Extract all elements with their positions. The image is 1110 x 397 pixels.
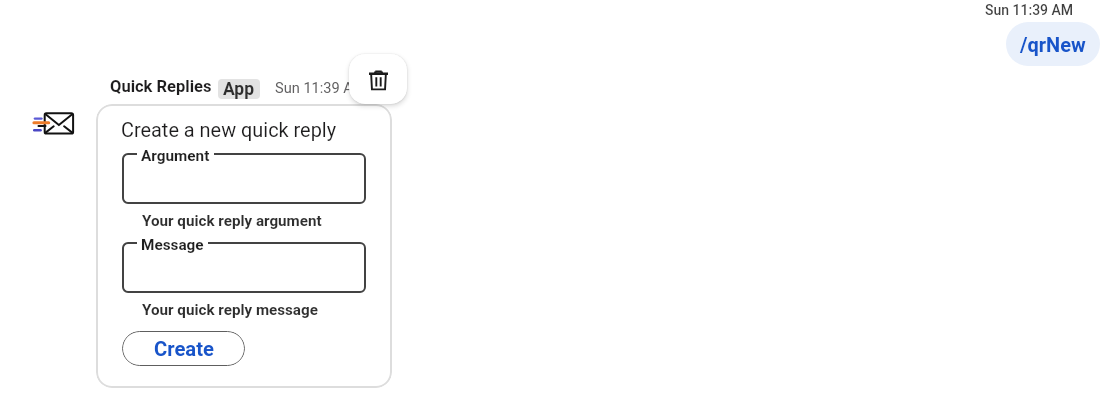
staticText: Quick Replies [110,77,212,96]
staticText: Your quick reply message [142,301,318,319]
button[interactable]: Argument [122,145,366,204]
staticText: Create a new quick reply [121,119,337,142]
button[interactable]: Delete message [349,54,407,104]
staticText: Argument [141,147,210,165]
button[interactable]: /qrNew [1006,22,1100,66]
staticText: App [223,79,255,99]
staticText: Message [141,236,204,254]
button[interactable]: Message [122,234,366,293]
button[interactable]: Create [122,331,245,366]
staticText: Sun 11:39 AM [985,2,1074,18]
staticText: Create [154,337,214,361]
button[interactable]: Quick Replies app avatar [30,108,78,156]
staticText: Your quick reply argument [142,212,322,230]
staticText: Sun 11:39 AM [275,79,366,96]
button[interactable]: Quick Replies [110,77,212,96]
staticText: /qrNew [1020,33,1086,56]
